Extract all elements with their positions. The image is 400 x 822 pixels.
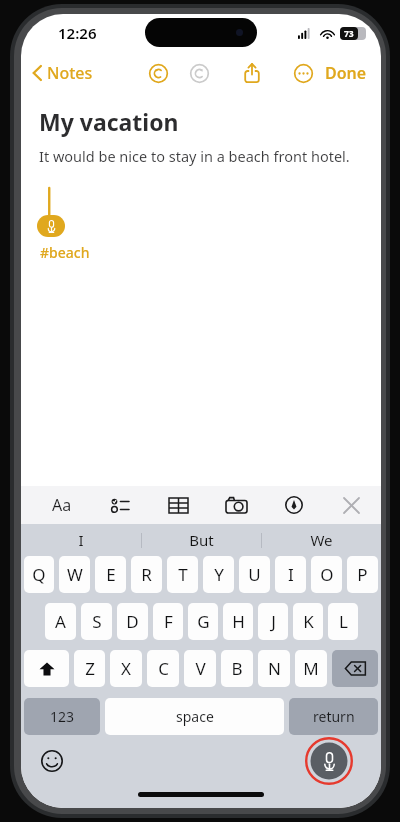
button[interactable]: Dictation active [37,215,65,237]
staticText: It would be nice to stay in a beach fron… [39,146,350,166]
button[interactable]: Shift [24,650,69,687]
button[interactable]: Text format [47,490,77,520]
button[interactable]: B [221,650,253,687]
button[interactable]: More options [286,56,320,90]
button[interactable]: C [147,650,179,687]
staticText: 73 [344,28,354,40]
staticText: L [339,610,348,633]
button[interactable]: Z [74,650,105,687]
button[interactable]: Undo [141,56,175,90]
button[interactable]: F [153,603,183,640]
staticText: I [288,563,294,586]
staticText: C [158,657,169,680]
staticText: H [232,610,245,633]
button[interactable]: U [239,556,270,593]
button[interactable]: L [328,603,358,640]
staticText: D [126,610,139,633]
staticText: M [303,657,319,680]
staticText: Q [32,563,46,586]
button[interactable]: Notes [27,57,99,89]
button[interactable]: Backspace [332,650,378,687]
button[interactable]: Insert table [163,490,193,520]
button[interactable]: D [117,603,148,640]
staticText: G [197,610,210,633]
button[interactable]: We [262,530,381,550]
button[interactable]: Checklist [105,490,135,520]
button[interactable]: Dictation [305,737,353,785]
button[interactable]: Q [24,556,54,593]
button[interactable]: space [105,698,284,735]
button[interactable]: #beach [40,243,90,262]
staticText: B [231,657,243,680]
staticText: N [268,657,281,680]
staticText: E [106,563,116,586]
staticText: return [313,707,355,726]
button[interactable]: N [258,650,290,687]
button[interactable]: T [167,556,198,593]
staticText: My vacation [39,106,179,137]
button[interactable]: H [223,603,253,640]
button[interactable]: I [275,556,306,593]
button[interactable]: I [21,530,141,550]
button[interactable]: Camera [221,490,251,520]
button[interactable]: 123 [24,698,100,735]
staticText: space [176,707,214,726]
staticText: We [310,530,333,550]
button[interactable]: V [184,650,216,687]
staticText: I [78,530,84,550]
staticText: Y [214,563,224,586]
button[interactable]: Emoji keyboard [35,744,69,778]
staticText: But [189,530,214,550]
button[interactable]: Redo [182,56,216,90]
button[interactable]: E [95,556,126,593]
staticText: W [67,563,83,586]
button[interactable]: M [295,650,327,687]
staticText: O [320,563,334,586]
staticText: J [271,610,276,633]
button[interactable]: R [131,556,162,593]
staticText: Done [325,62,367,84]
staticText: 123 [50,707,75,726]
button[interactable]: Y [203,556,234,593]
button[interactable]: Done [319,57,373,89]
staticText: A [55,610,66,633]
staticText: Notes [47,62,93,84]
button[interactable]: But [142,530,261,550]
staticText: R [141,563,152,586]
staticText: K [303,610,314,633]
button[interactable]: W [59,556,90,593]
staticText: Z [85,657,95,680]
staticText: S [92,610,102,633]
button[interactable]: K [293,603,323,640]
button[interactable]: P [347,556,378,593]
staticText: 12:26 [58,23,97,43]
button[interactable]: X [110,650,142,687]
button[interactable]: G [188,603,218,640]
button[interactable]: S [81,603,112,640]
button[interactable]: return [289,698,378,735]
button[interactable]: Share [235,56,269,90]
staticText: X [121,657,131,680]
button[interactable]: A [45,603,76,640]
staticText: P [357,563,368,586]
button[interactable]: O [311,556,342,593]
staticText: Aa [52,494,72,516]
button[interactable]: J [258,603,288,640]
staticText: U [248,563,261,586]
button[interactable]: Markup [279,490,309,520]
button[interactable]: Close keyboard [337,490,365,520]
staticText: F [164,610,173,633]
staticText: T [178,563,188,586]
staticText: V [195,657,206,680]
